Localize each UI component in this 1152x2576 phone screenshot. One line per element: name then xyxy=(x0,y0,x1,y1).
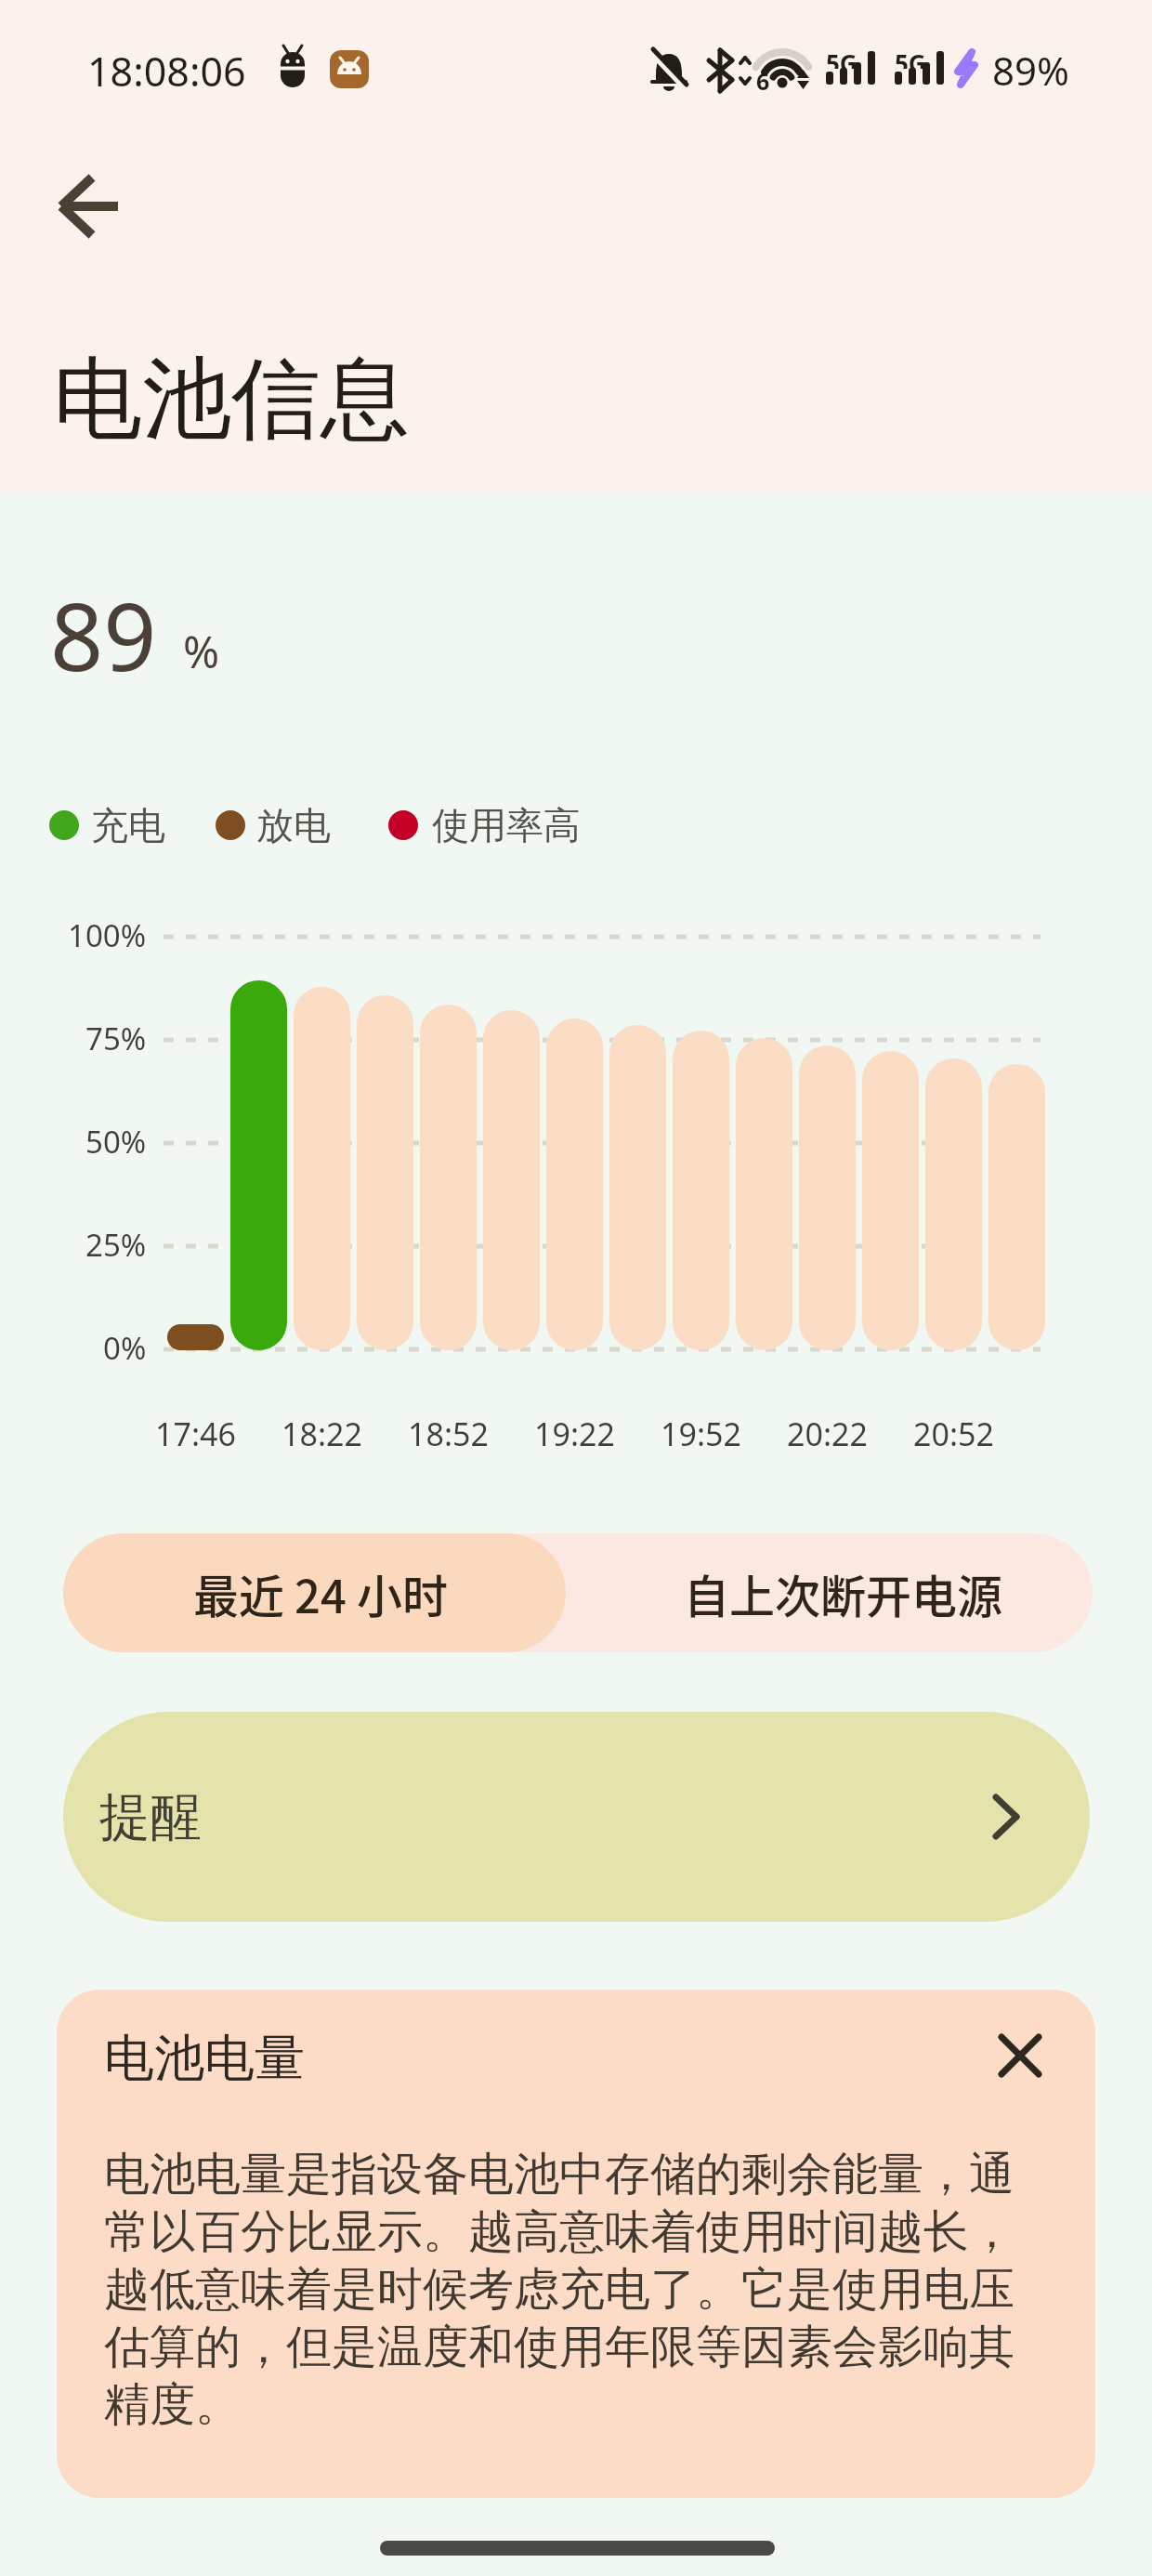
staticText: 100% xyxy=(68,914,147,955)
staticText: 50% xyxy=(85,1121,147,1162)
staticText: 18:52 xyxy=(408,1413,489,1455)
staticText: 5G xyxy=(895,46,926,69)
staticText: 89 xyxy=(50,572,157,688)
staticText: 充电 xyxy=(91,802,165,848)
staticText: 6 xyxy=(756,65,770,93)
staticText: 电池信息 xyxy=(53,344,410,456)
staticText: 75% xyxy=(85,1018,147,1058)
staticText: 最近 24 小时 xyxy=(193,1560,448,1626)
staticText: 使用率高 xyxy=(432,802,581,848)
staticText: 18:08:06 xyxy=(87,44,246,92)
button[interactable]: 自上次断开电源 xyxy=(566,1533,1093,1652)
staticText: 20:52 xyxy=(913,1413,994,1455)
staticText: 0% xyxy=(103,1327,147,1368)
staticText: 25% xyxy=(85,1224,147,1265)
button[interactable] xyxy=(44,162,133,251)
staticText: 电池电量是指设备电池中存储的剩余能量，通 常以百分比显示。越高意味着使用时间越长… xyxy=(104,2146,1052,2433)
button[interactable]: 提醒 xyxy=(63,1712,1090,1922)
staticText: 89% xyxy=(992,44,1069,92)
staticText: 18:22 xyxy=(281,1413,362,1455)
staticText: % xyxy=(183,622,220,681)
staticText: 提醒 xyxy=(99,1785,202,1849)
staticText: 自上次断开电源 xyxy=(684,1560,1003,1626)
staticText: 19:22 xyxy=(534,1413,615,1455)
staticText: 19:52 xyxy=(661,1413,741,1455)
staticText: 放电 xyxy=(256,802,331,848)
staticText: 5G xyxy=(826,46,857,69)
staticText: 17:46 xyxy=(155,1413,236,1455)
staticText: 电池电量 xyxy=(104,2027,305,2090)
staticText: 20:22 xyxy=(787,1413,868,1455)
button[interactable] xyxy=(990,2026,1050,2085)
button[interactable]: 最近 24 小时 xyxy=(63,1533,566,1652)
